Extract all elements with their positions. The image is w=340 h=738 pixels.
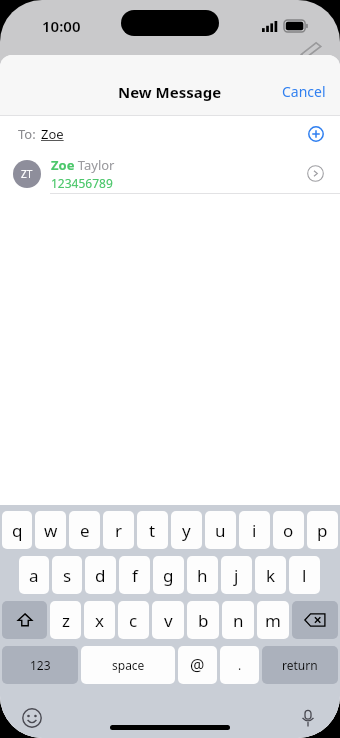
staticText: r <box>115 519 123 542</box>
staticText: d <box>95 564 106 587</box>
button[interactable]: ZT <box>0 152 340 194</box>
staticText: Zoe Taylor <box>51 156 115 174</box>
button[interactable]: o <box>273 511 304 549</box>
button[interactable]: f <box>119 556 150 594</box>
staticText: q <box>12 519 23 542</box>
button[interactable]: Add contact <box>302 120 330 148</box>
button[interactable]: s <box>52 556 82 594</box>
button[interactable]: Backspace <box>292 601 338 639</box>
staticText: o <box>283 519 294 542</box>
button[interactable]: p <box>307 511 338 549</box>
button[interactable]: Shift <box>2 601 47 639</box>
staticText: c <box>129 609 138 632</box>
staticText: f <box>132 564 138 587</box>
button[interactable]: r <box>103 511 134 549</box>
staticText: y <box>182 519 191 542</box>
staticText: space <box>112 657 145 673</box>
button[interactable]: b <box>187 601 219 639</box>
button[interactable]: Emoji <box>18 704 46 732</box>
button[interactable]: a <box>19 556 49 594</box>
staticText: x <box>95 609 104 632</box>
button[interactable]: y <box>171 511 202 549</box>
staticText: b <box>198 609 209 632</box>
staticText: g <box>163 564 174 587</box>
staticText: k <box>266 564 276 587</box>
button[interactable]: . <box>220 646 259 684</box>
staticText: @ <box>190 654 205 676</box>
button[interactable]: space <box>81 646 175 684</box>
staticText: 123456789 <box>51 175 113 191</box>
button[interactable]: u <box>205 511 236 549</box>
button[interactable]: g <box>153 556 184 594</box>
staticText: z <box>62 609 70 632</box>
staticText: Zoe <box>41 125 64 143</box>
staticText: 10:00 <box>42 16 81 36</box>
staticText: w <box>44 519 58 542</box>
button[interactable]: c <box>118 601 149 639</box>
staticText: t <box>149 519 156 542</box>
staticText: To: <box>18 125 36 143</box>
staticText: a <box>29 564 39 587</box>
staticText: p <box>317 519 328 542</box>
button[interactable]: d <box>85 556 116 594</box>
button[interactable]: j <box>221 556 252 594</box>
staticText: e <box>80 519 90 542</box>
button[interactable]: Contact details <box>301 159 330 188</box>
staticText: ZT <box>21 167 33 181</box>
button[interactable]: z <box>50 601 81 639</box>
staticText: n <box>233 609 244 632</box>
button[interactable]: q <box>2 511 32 549</box>
staticText: i <box>252 519 257 542</box>
staticText: . <box>238 657 242 673</box>
staticText: u <box>215 519 226 542</box>
button[interactable]: t <box>137 511 168 549</box>
staticText: h <box>197 564 208 587</box>
button[interactable]: Dictate <box>294 704 322 732</box>
button[interactable]: k <box>255 556 286 594</box>
button[interactable]: n <box>222 601 254 639</box>
button[interactable]: 123 <box>2 646 78 684</box>
staticText: 123 <box>30 657 51 673</box>
button[interactable]: i <box>239 511 270 549</box>
button[interactable]: Cancel <box>268 76 340 107</box>
staticText: l <box>302 564 307 587</box>
staticText: j <box>234 564 239 587</box>
button[interactable]: @ <box>178 646 217 684</box>
staticText: v <box>164 609 173 632</box>
staticText: return <box>282 657 318 673</box>
staticText: s <box>63 564 72 587</box>
button[interactable]: v <box>152 601 184 639</box>
button[interactable]: w <box>35 511 66 549</box>
staticText: Cancel <box>282 82 326 101</box>
button[interactable]: return <box>262 646 338 684</box>
button[interactable]: m <box>257 601 289 639</box>
button[interactable]: x <box>84 601 115 639</box>
staticText: m <box>265 609 281 632</box>
button[interactable]: h <box>187 556 218 594</box>
button[interactable]: l <box>289 556 320 594</box>
staticText: New Message <box>118 82 222 102</box>
button[interactable]: e <box>69 511 100 549</box>
